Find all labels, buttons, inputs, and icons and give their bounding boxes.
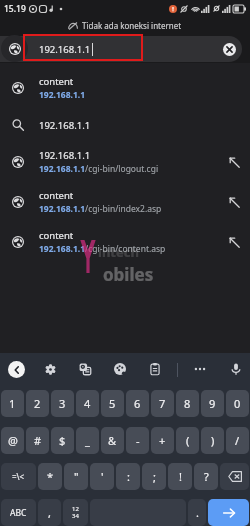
staticText: _ [85, 433, 90, 448]
button[interactable]: ? [194, 463, 218, 490]
staticText: ! [179, 469, 182, 484]
button[interactable]: Clear [217, 37, 241, 61]
button[interactable]: 5 [101, 390, 124, 417]
button[interactable]: 0 [226, 390, 249, 417]
button[interactable]: : [116, 463, 140, 490]
staticText: content [39, 189, 74, 202]
staticText: 8 [184, 396, 191, 411]
button[interactable]: ABC [1, 499, 36, 526]
button[interactable]: _ [76, 427, 99, 454]
button[interactable]: Translate [74, 358, 96, 380]
button[interactable]: 2 [26, 390, 49, 417]
button[interactable]: 192.168.1.1 [0, 142, 250, 182]
staticText: ? [204, 469, 209, 484]
staticText: ; [153, 469, 156, 484]
button[interactable]: Voice input [225, 358, 247, 380]
button[interactable]: Numbers [63, 499, 88, 526]
button[interactable]: 3 [51, 390, 74, 417]
button[interactable]: Hide toolbar [8, 361, 25, 378]
button[interactable]: , [38, 499, 61, 526]
staticText: + [159, 433, 166, 448]
button[interactable]: ; [142, 463, 166, 490]
button[interactable]: @ [1, 427, 24, 454]
staticText: : [127, 469, 130, 484]
staticText: 192.168.1.1 [39, 43, 91, 56]
button[interactable]: + [151, 427, 174, 454]
staticText: Tidak ada koneksi internet [82, 20, 182, 31]
button[interactable]: Settings [39, 358, 61, 380]
button[interactable]: Insert suggestion [225, 193, 243, 211]
button[interactable]: $ [51, 427, 74, 454]
staticText: 6 [134, 396, 141, 411]
staticText: $ [59, 433, 66, 448]
staticText: content [39, 75, 74, 88]
staticText: ) [211, 433, 215, 448]
button[interactable]: content [0, 68, 250, 108]
staticText: 1 [9, 396, 16, 411]
staticText: # [34, 433, 42, 448]
staticText: 192.168.1.1/cgi-bin/logout.cgi [39, 163, 159, 175]
button[interactable]: 192.168.1.1 [0, 108, 250, 142]
staticText: - [136, 433, 140, 448]
button[interactable]: ! [168, 463, 192, 490]
staticText: content [39, 229, 74, 242]
button[interactable]: Insert suggestion [225, 233, 243, 251]
staticText: 7 [159, 396, 166, 411]
staticText: ABC [10, 507, 27, 519]
button[interactable]: 4 [76, 390, 99, 417]
button[interactable]: =\< [1, 463, 36, 490]
staticText: 15.19 [4, 3, 26, 15]
button[interactable]: ( [176, 427, 199, 454]
staticText: * [47, 469, 54, 484]
staticText: 192.168.1.1 [39, 149, 91, 162]
staticText: 2 [34, 396, 41, 411]
button[interactable]: 1 [1, 390, 24, 417]
button[interactable]: . [188, 499, 206, 526]
button[interactable]: " [64, 463, 88, 490]
button[interactable]: 8 [176, 390, 199, 417]
staticText: @ [8, 433, 18, 448]
button[interactable]: 6 [126, 390, 149, 417]
staticText: & [108, 433, 117, 448]
button[interactable]: # [26, 427, 49, 454]
staticText: 12 34 [72, 505, 79, 520]
staticText: 192.168.1.1/cgi-bin/content.asp [39, 243, 166, 255]
staticText: 3 [59, 396, 66, 411]
button[interactable]: ) [201, 427, 224, 454]
staticText: 192.168.1.1 [39, 119, 91, 132]
staticText: " [74, 469, 79, 484]
staticText: =\< [12, 471, 25, 482]
button[interactable]: content [0, 182, 250, 222]
button[interactable]: * [38, 463, 62, 490]
button[interactable]: 192.168.1.1 [0, 36, 242, 62]
button[interactable]: ' [90, 463, 114, 490]
staticText: intech [98, 243, 139, 261]
staticText: ' [101, 469, 104, 484]
staticText: 4 [84, 396, 91, 411]
button[interactable]: Backspace [220, 463, 249, 490]
button[interactable]: Site information [1, 35, 28, 62]
staticText: 192.168.1.1/cgi-bin/index2.asp [39, 203, 162, 215]
button[interactable]: - [126, 427, 149, 454]
staticText: 5 [109, 396, 116, 411]
staticText: 0 [234, 396, 241, 411]
button[interactable]: 7 [151, 390, 174, 417]
staticText: . [196, 505, 199, 520]
button[interactable]: Go [208, 499, 249, 526]
button[interactable]: & [101, 427, 124, 454]
staticText: 192.168.1.1 [39, 89, 86, 101]
staticText: ( [186, 433, 190, 448]
staticText: , [48, 505, 51, 520]
button[interactable]: 9 [201, 390, 224, 417]
button[interactable]: Clipboard [144, 358, 166, 380]
button[interactable]: content [0, 222, 250, 262]
button[interactable]: More options [189, 358, 211, 380]
button[interactable]: Themes [109, 358, 131, 380]
staticText: obiles [103, 263, 154, 286]
button[interactable]: / [226, 427, 249, 454]
button[interactable]: Insert suggestion [225, 153, 243, 171]
staticText: / [235, 433, 240, 448]
staticText: 9 [209, 396, 216, 411]
